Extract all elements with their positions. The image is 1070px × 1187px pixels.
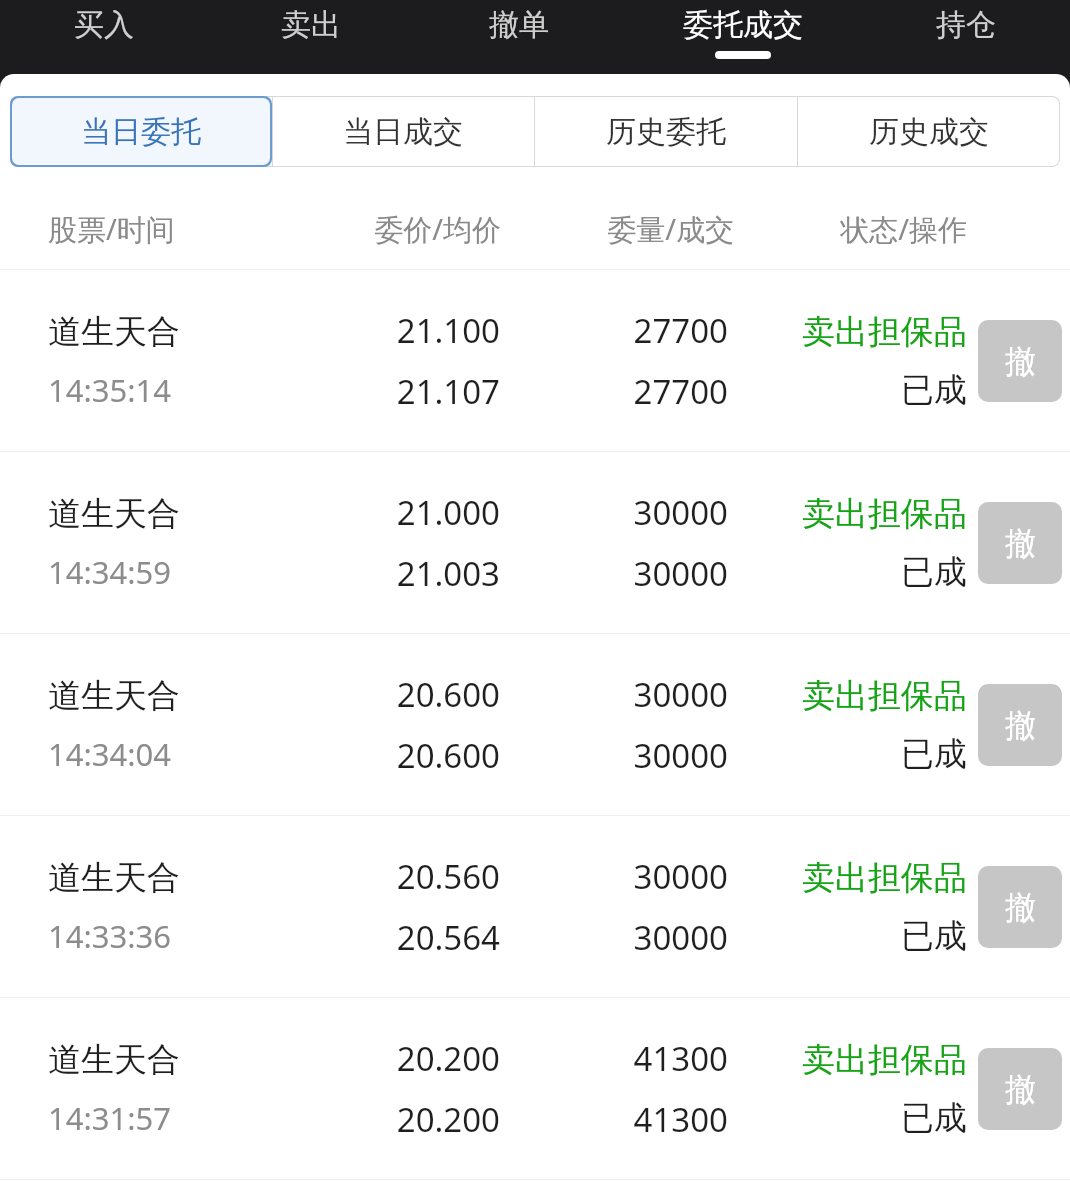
staticText: 20.600 (396, 733, 500, 778)
staticText: 14:33:36 (48, 915, 172, 957)
staticText: 道生天合 (48, 493, 180, 535)
staticText: 卖出 (281, 6, 341, 44)
staticText: 历史委托 (606, 113, 726, 151)
staticText: 股票/时间 (48, 209, 280, 249)
staticText: 历史成交 (869, 113, 989, 151)
staticText: 撤 (1005, 524, 1036, 563)
button[interactable]: 道生天合 (0, 998, 1070, 1179)
button[interactable]: 委托成交 (623, 0, 862, 74)
staticText: 卖出担保品 (802, 857, 967, 899)
staticText: 20.564 (396, 915, 500, 960)
staticText: 卖出担保品 (802, 1039, 967, 1081)
staticText: 道生天合 (48, 1039, 180, 1081)
staticText: 卖出担保品 (802, 675, 967, 717)
staticText: 30000 (633, 915, 728, 960)
button[interactable]: 买入 (0, 0, 207, 74)
staticText: 状态/操作 (746, 209, 967, 249)
staticText: 14:35:14 (48, 369, 172, 411)
staticText: 已成 (901, 551, 967, 593)
staticText: 撤 (1005, 706, 1036, 745)
staticText: 21.003 (396, 551, 500, 596)
staticText: 14:34:04 (48, 733, 172, 775)
button[interactable]: 撤单 (978, 502, 1062, 584)
button[interactable]: 撤单 (978, 320, 1062, 402)
staticText: 已成 (901, 733, 967, 775)
button[interactable]: 道生天合 (0, 816, 1070, 997)
staticText: 当日成交 (343, 113, 463, 151)
button[interactable]: 撤单 (978, 1048, 1062, 1130)
staticText: 21.107 (396, 369, 500, 414)
staticText: 14:31:57 (48, 1097, 172, 1139)
staticText: 道生天合 (48, 857, 180, 899)
button[interactable]: 持仓 (862, 0, 1070, 74)
button[interactable]: 撤单 (415, 0, 623, 74)
staticText: 30000 (633, 733, 728, 778)
staticText: 已成 (901, 369, 967, 411)
staticText: 30000 (633, 551, 728, 596)
staticText: 27700 (633, 369, 728, 414)
staticText: 41300 (633, 1036, 728, 1081)
button[interactable]: 历史委托 (534, 96, 797, 167)
staticText: 买入 (74, 6, 134, 44)
staticText: 当日委托 (81, 113, 201, 151)
button[interactable]: 卖出 (207, 0, 415, 74)
button[interactable]: 撤单 (978, 684, 1062, 766)
staticText: 30000 (633, 854, 728, 899)
staticText: 30000 (633, 672, 728, 717)
staticText: 委量/成交 (513, 209, 734, 249)
staticText: 20.200 (396, 1036, 500, 1081)
staticText: 21.000 (396, 490, 500, 535)
button[interactable]: 当日委托 (10, 96, 272, 167)
staticText: 14:34:59 (48, 551, 172, 593)
staticText: 已成 (901, 915, 967, 957)
button[interactable]: 道生天合 (0, 452, 1070, 633)
button[interactable]: 历史成交 (797, 96, 1060, 167)
staticText: 委价/均价 (280, 209, 501, 249)
staticText: 撤 (1005, 1070, 1036, 1109)
staticText: 30000 (633, 490, 728, 535)
button[interactable]: 道生天合 (0, 270, 1070, 451)
staticText: 卖出担保品 (802, 493, 967, 535)
staticText: 委托成交 (683, 6, 803, 44)
button[interactable]: 撤单 (978, 866, 1062, 948)
staticText: 21.100 (396, 308, 500, 353)
staticText: 道生天合 (48, 675, 180, 717)
staticText: 撤单 (489, 6, 549, 44)
staticText: 27700 (633, 308, 728, 353)
staticText: 20.560 (396, 854, 500, 899)
staticText: 20.600 (396, 672, 500, 717)
staticText: 道生天合 (48, 311, 180, 353)
staticText: 20.200 (396, 1097, 500, 1142)
staticText: 持仓 (936, 6, 996, 44)
staticText: 撤 (1005, 342, 1036, 381)
staticText: 41300 (633, 1097, 728, 1142)
button[interactable]: 道生天合 (0, 634, 1070, 815)
staticText: 撤 (1005, 888, 1036, 927)
button[interactable]: 当日成交 (272, 96, 534, 167)
staticText: 已成 (901, 1097, 967, 1139)
staticText: 卖出担保品 (802, 311, 967, 353)
